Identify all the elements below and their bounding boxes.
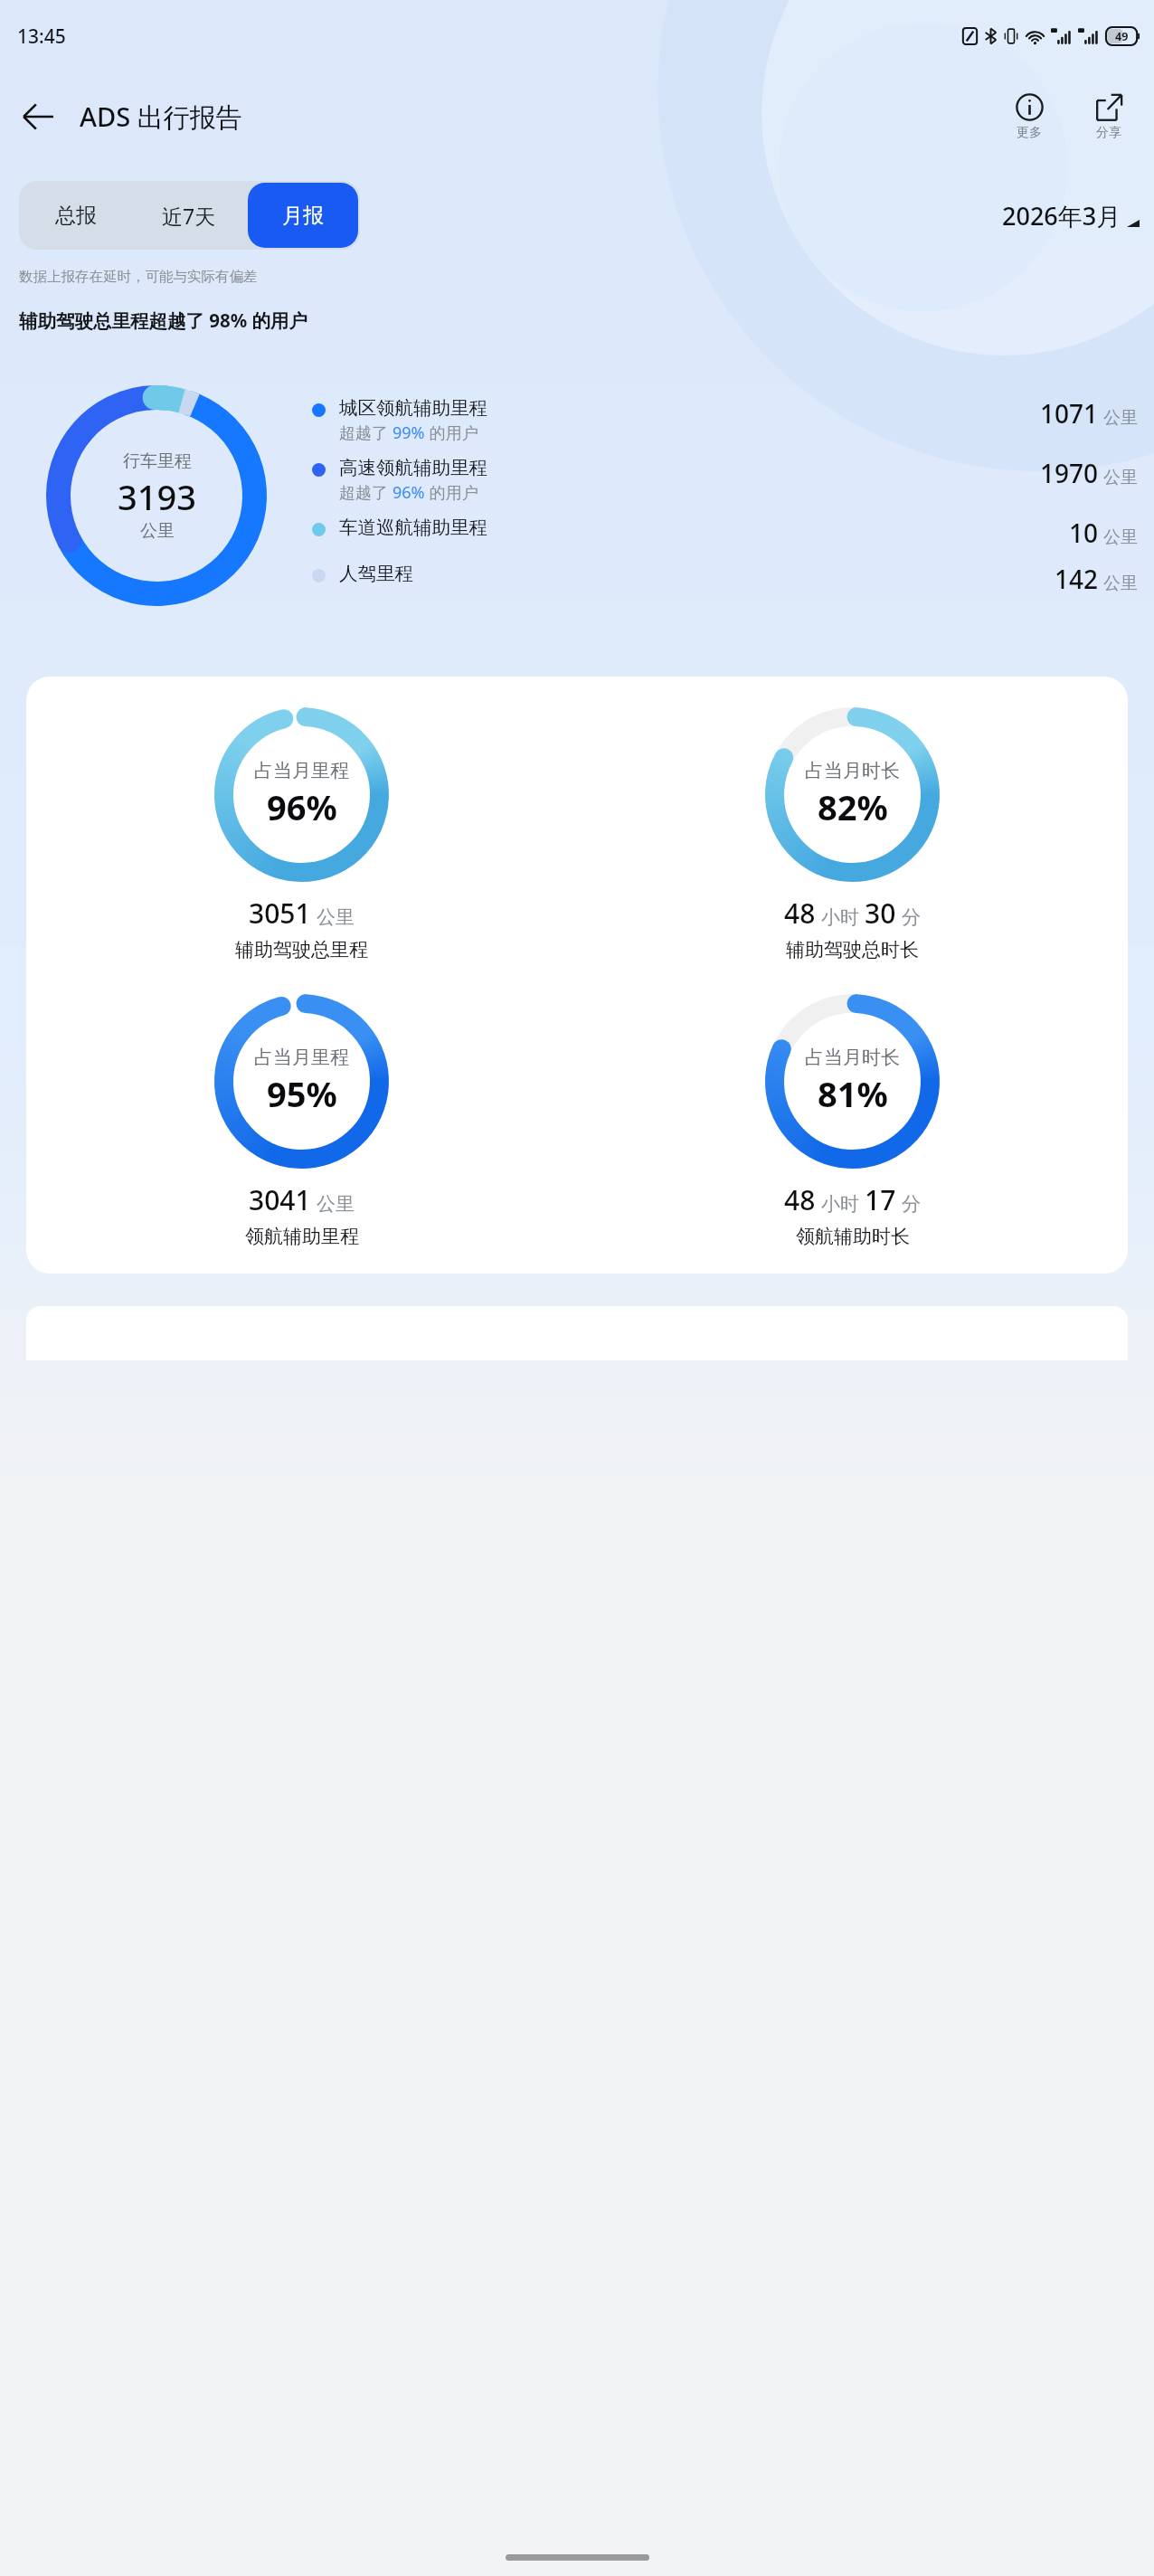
button[interactable]: 占当月时长 <box>577 707 1128 961</box>
staticText: 82% <box>818 783 888 830</box>
staticText: 分享 <box>1096 125 1121 141</box>
staticText: 车道巡航辅助里程 <box>339 516 487 539</box>
button[interactable]: 高速领航辅助里程 <box>312 456 1138 504</box>
staticText: 3193 <box>118 473 196 520</box>
staticText: 近7天 <box>162 202 216 230</box>
button[interactable]: 2026年3月 <box>995 194 1140 238</box>
button[interactable]: Back <box>11 90 65 144</box>
staticText: 总报 <box>55 203 97 229</box>
staticText: 占当月时长 <box>805 1046 900 1069</box>
staticText: 占当月里程 <box>254 759 349 782</box>
button[interactable]: 月报 <box>248 183 358 248</box>
staticText: 公里 <box>140 520 175 542</box>
staticText: 人驾里程 <box>339 562 413 585</box>
button[interactable]: 城区领航辅助里程 <box>312 396 1138 444</box>
staticText: 领航辅助里程 <box>245 1225 359 1248</box>
staticText: 的用户 <box>425 421 478 444</box>
staticText: 月报 <box>282 203 324 229</box>
staticText: 辅助驾驶总里程 <box>235 938 368 961</box>
button[interactable]: 车道巡航辅助里程 <box>312 516 1138 550</box>
button[interactable]: More <box>1000 91 1058 143</box>
staticText: 48 <box>784 895 816 932</box>
staticText: 49 <box>1115 29 1129 44</box>
staticText: 13:45 <box>17 24 66 50</box>
staticText: 3041 <box>249 1181 311 1218</box>
button[interactable]: 占当月时长 <box>577 994 1128 1248</box>
staticText: 小时 <box>821 905 859 929</box>
staticText: 公里 <box>317 1192 355 1216</box>
staticText: 48 <box>784 1181 816 1218</box>
staticText: 公里 <box>1103 407 1138 429</box>
staticText: 数据上报存在延时，可能与实际有偏差 <box>19 268 258 286</box>
staticText: ADS 出行报告 <box>80 99 242 135</box>
staticText: 96% <box>393 481 425 504</box>
staticText: 公里 <box>317 905 355 929</box>
button[interactable]: 占当月里程 <box>26 707 577 961</box>
staticText: 辅助驾驶总里程超越了 98% 的用户 <box>19 308 308 333</box>
staticText: 超越了 <box>339 421 393 444</box>
staticText: 领航辅助时长 <box>796 1225 910 1248</box>
staticText: 更多 <box>1017 125 1042 141</box>
staticText: 行车里程 <box>123 450 192 472</box>
staticText: 小时 <box>821 1192 859 1216</box>
staticText: 81% <box>818 1070 888 1117</box>
staticText: 10 <box>1069 516 1099 550</box>
staticText: 高速领航辅助里程 <box>339 456 487 479</box>
staticText: 99% <box>393 421 425 444</box>
button[interactable]: 近7天 <box>134 183 244 248</box>
staticText: 分 <box>902 1192 921 1216</box>
button[interactable]: 人驾里程 <box>312 562 1138 596</box>
staticText: 30 <box>865 895 896 932</box>
staticText: 的用户 <box>425 481 478 504</box>
staticText: 城区领航辅助里程 <box>339 396 487 420</box>
button[interactable]: Share <box>1080 91 1138 143</box>
staticText: 公里 <box>1103 467 1138 488</box>
staticText: 占当月里程 <box>254 1046 349 1069</box>
staticText: 公里 <box>1103 526 1138 548</box>
staticText: 超越了 <box>339 481 393 504</box>
staticText: 占当月时长 <box>805 759 900 782</box>
staticText: 1970 <box>1040 456 1099 490</box>
staticText: 3051 <box>249 895 311 932</box>
staticText: 96% <box>267 783 337 830</box>
staticText: 142 <box>1055 562 1099 596</box>
staticText: 1071 <box>1040 396 1099 431</box>
staticText: 分 <box>902 905 921 929</box>
staticText: 辅助驾驶总时长 <box>786 938 919 961</box>
staticText: 17 <box>865 1181 896 1218</box>
staticText: 95% <box>267 1070 337 1117</box>
staticText: 2026年3月 <box>1002 199 1121 232</box>
button[interactable]: 占当月里程 <box>26 994 577 1248</box>
staticText: 公里 <box>1103 573 1138 594</box>
button[interactable]: 总报 <box>21 183 130 248</box>
